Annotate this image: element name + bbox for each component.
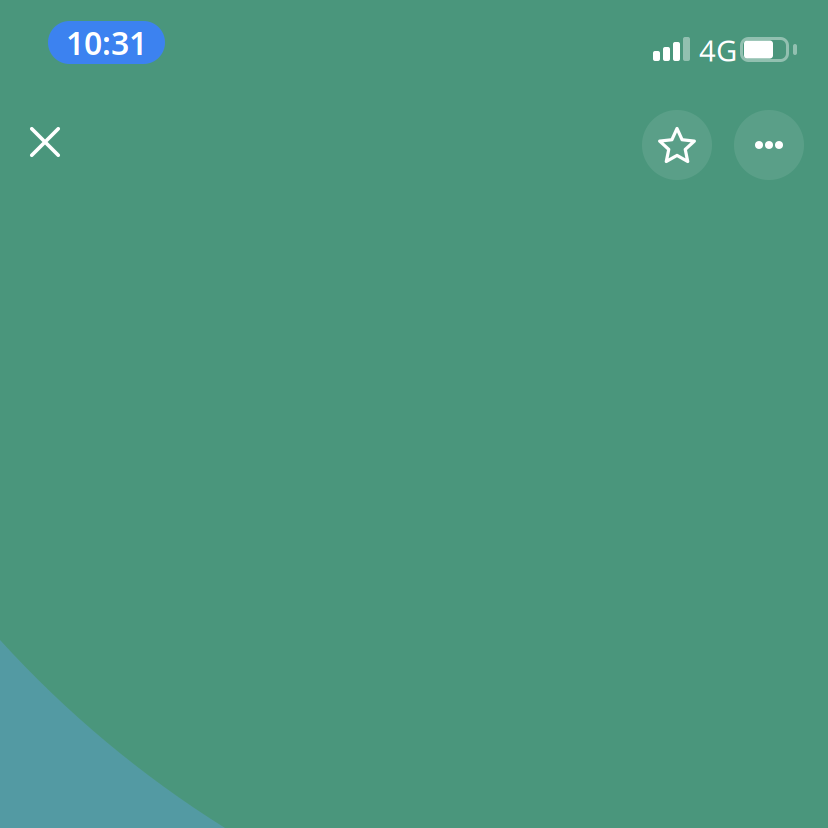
button[interactable]: Favourite bbox=[642, 110, 712, 180]
button[interactable]: Close bbox=[10, 107, 80, 177]
staticText: 10:31 bbox=[66, 21, 147, 64]
button[interactable]: More options bbox=[734, 110, 804, 180]
staticText: 4G bbox=[699, 30, 737, 69]
